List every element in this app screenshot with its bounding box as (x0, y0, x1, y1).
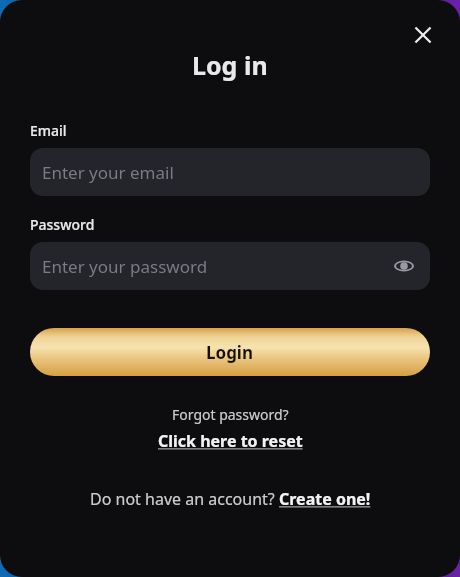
button[interactable]: Login (30, 328, 430, 376)
staticText: Enter your email (42, 161, 174, 184)
button[interactable]: Create one! (279, 488, 371, 510)
button[interactable]: Enter your email (30, 148, 430, 196)
button[interactable]: Click here to reset (158, 430, 303, 452)
staticText: Click here to reset (158, 430, 303, 452)
staticText: Create one! (279, 488, 371, 510)
staticText: Do not have an account? (90, 488, 279, 510)
staticText: Password (30, 215, 95, 234)
staticText: Log in (192, 48, 268, 82)
button[interactable]: Show password (390, 252, 418, 280)
button[interactable]: Close (400, 12, 446, 58)
staticText: Forgot password? (172, 405, 289, 424)
button[interactable]: Enter your password (30, 242, 430, 290)
staticText: Enter your password (42, 255, 208, 278)
staticText: Email (30, 121, 67, 140)
staticText: Login (206, 341, 254, 364)
